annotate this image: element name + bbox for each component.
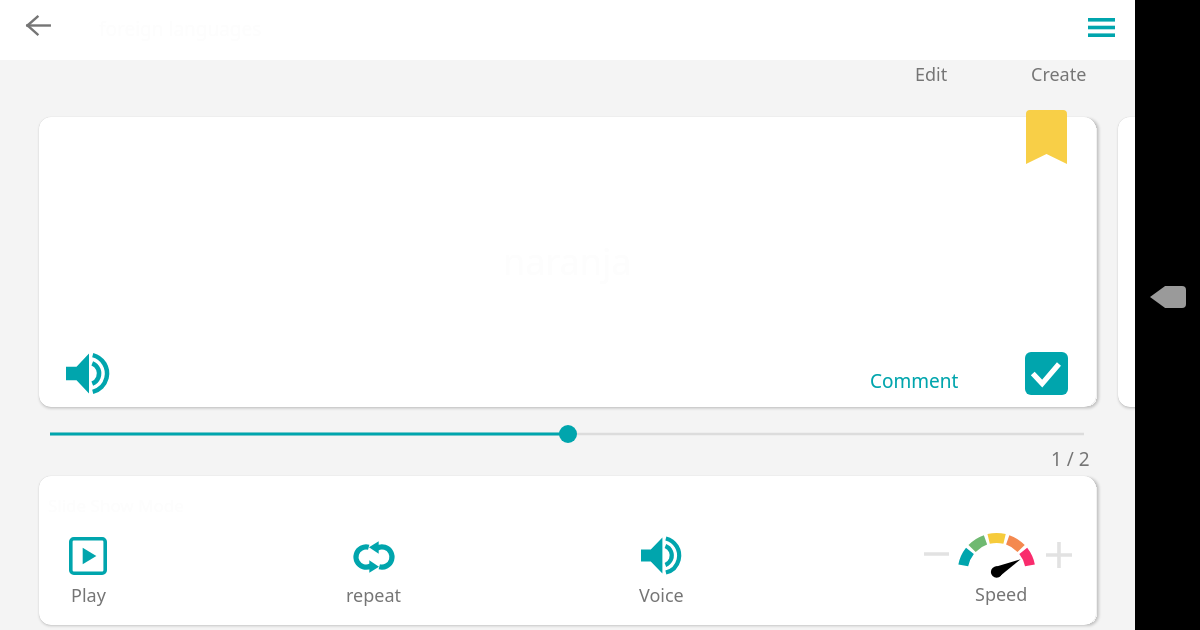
button[interactable]: Mark as known: [1025, 352, 1068, 395]
button[interactable]: Menu: [1078, 4, 1124, 50]
button[interactable]: Create: [1017, 59, 1101, 89]
button[interactable]: Slower: [906, 524, 966, 584]
staticText: Edit: [915, 62, 948, 87]
button[interactable]: Repeat: [324, 522, 424, 608]
staticText: Voice: [639, 583, 684, 608]
staticText: Comment: [870, 368, 959, 394]
staticText: Play: [71, 583, 106, 608]
button[interactable]: Comment: [856, 361, 973, 401]
button[interactable]: Back gesture: [1150, 286, 1186, 308]
button[interactable]: Speed: [946, 515, 1046, 595]
button[interactable]: Back: [16, 3, 60, 47]
button[interactable]: Bookmarked: [1026, 110, 1067, 164]
button[interactable]: Play slideshow: [39, 522, 138, 608]
button[interactable]: naranja: [39, 117, 1096, 407]
staticText: 1 / 2: [1051, 446, 1090, 472]
staticText: Create: [1031, 62, 1087, 87]
button[interactable]: Edit: [901, 59, 962, 89]
button[interactable]: Voice: [611, 522, 711, 608]
staticText: repeat: [346, 583, 402, 608]
button[interactable]: Play audio: [55, 341, 119, 405]
staticText: Speed: [975, 582, 1028, 607]
button[interactable]: Faster: [1029, 525, 1089, 585]
